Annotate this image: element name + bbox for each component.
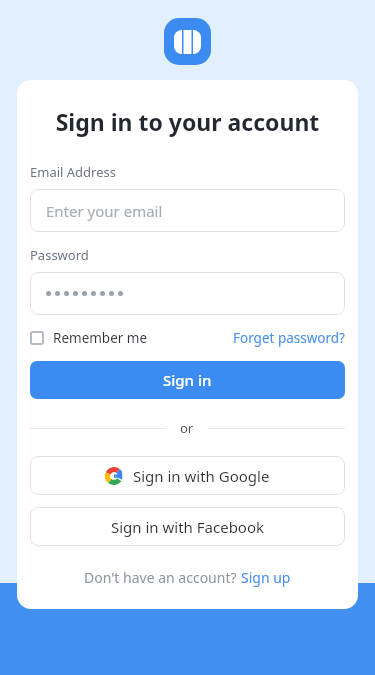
- button[interactable]: Sign in with Facebook: [30, 507, 345, 546]
- button[interactable]: Enter your email: [30, 189, 345, 232]
- staticText: Don't have an account?: [84, 568, 241, 587]
- staticText: Password: [30, 246, 89, 264]
- button[interactable]: [30, 272, 345, 315]
- button[interactable]: Sign in: [30, 361, 345, 399]
- staticText: Remember me: [53, 329, 148, 347]
- button[interactable]: Sign up: [241, 568, 291, 587]
- staticText: Sign in with Facebook: [111, 517, 265, 537]
- staticText: Enter your email: [46, 201, 163, 221]
- button[interactable]: Forget password?: [233, 329, 345, 347]
- staticText: Sign in: [163, 370, 212, 390]
- staticText: Email Address: [30, 163, 116, 181]
- staticText: or: [180, 419, 194, 437]
- staticText: Sign in with Google: [133, 466, 270, 486]
- button[interactable]: Sign in with Google: [30, 456, 345, 495]
- other: App logo: [164, 18, 211, 65]
- button[interactable]: Remember me: [30, 329, 148, 347]
- staticText: Sign in to your account: [30, 106, 345, 137]
